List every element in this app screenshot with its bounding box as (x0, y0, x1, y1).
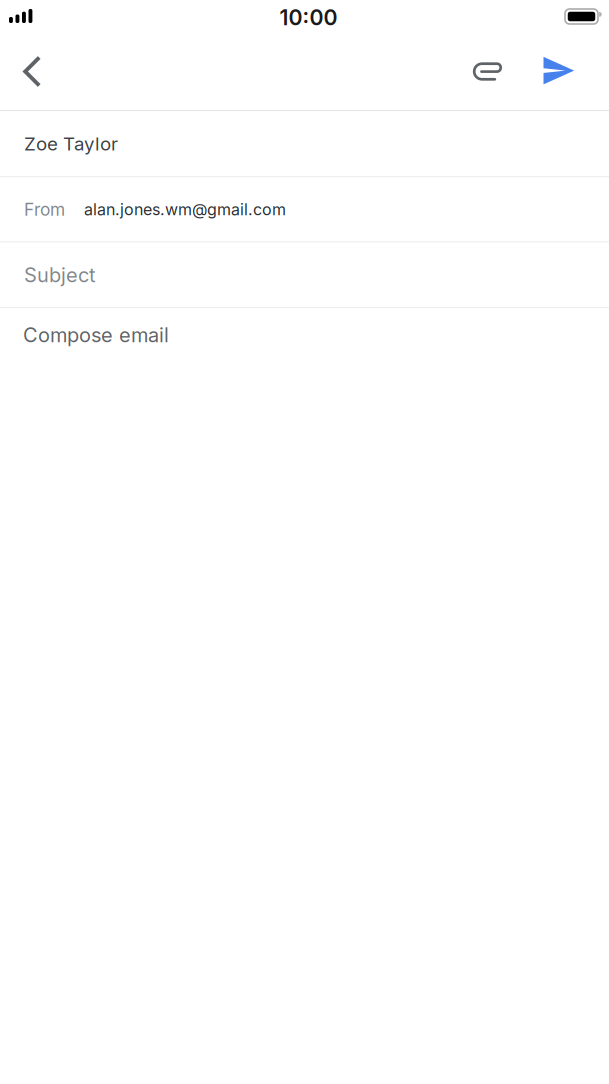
button[interactable]: Compose email (0, 308, 609, 1084)
button[interactable]: Subject (0, 243, 609, 307)
staticText: From (24, 199, 65, 220)
button[interactable]: Back (10, 41, 54, 101)
staticText: alan.jones.wm@gmail.com (84, 200, 286, 219)
button[interactable]: Send (537, 41, 581, 101)
staticText: Compose email (23, 323, 169, 347)
staticText: Zoe Taylor (24, 133, 118, 155)
button[interactable]: Zoe Taylor (0, 111, 609, 176)
button[interactable]: From (0, 177, 609, 241)
staticText: Subject (24, 263, 96, 287)
button[interactable]: Attach file (466, 41, 510, 101)
staticText: 10:00 (279, 5, 337, 30)
